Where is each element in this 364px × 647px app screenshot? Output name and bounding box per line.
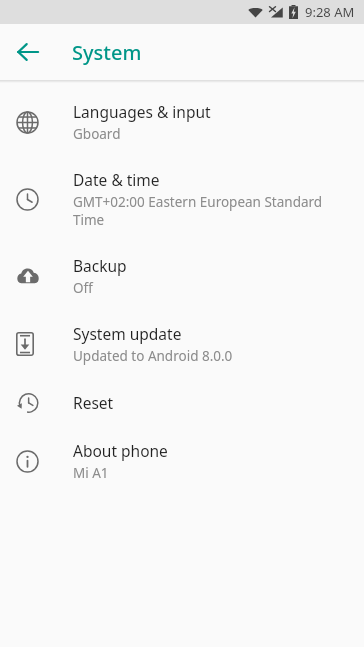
button[interactable]: Date & time [0, 156, 364, 242]
staticText: Off [73, 279, 93, 297]
staticText: 9:28 AM [305, 3, 355, 21]
button[interactable]: About phone [0, 427, 364, 495]
staticText: Updated to Android 8.0.0 [73, 347, 233, 365]
staticText: Date & time [73, 169, 160, 190]
staticText: Languages & input [73, 101, 211, 122]
button[interactable]: Back [8, 32, 48, 72]
button[interactable]: Backup [0, 242, 364, 310]
staticText: Mi A1 [73, 464, 109, 482]
button[interactable]: System update [0, 310, 364, 378]
button[interactable]: Reset [0, 378, 364, 427]
staticText: About phone [73, 440, 168, 461]
staticText: Gboard [73, 125, 121, 143]
staticText: Reset [73, 392, 114, 413]
staticText: GMT+02:00 Eastern European Standard Time [73, 193, 344, 229]
staticText: Backup [73, 255, 127, 276]
button[interactable]: Languages & input [0, 88, 364, 156]
staticText: System update [73, 323, 182, 344]
staticText: System [72, 39, 142, 66]
